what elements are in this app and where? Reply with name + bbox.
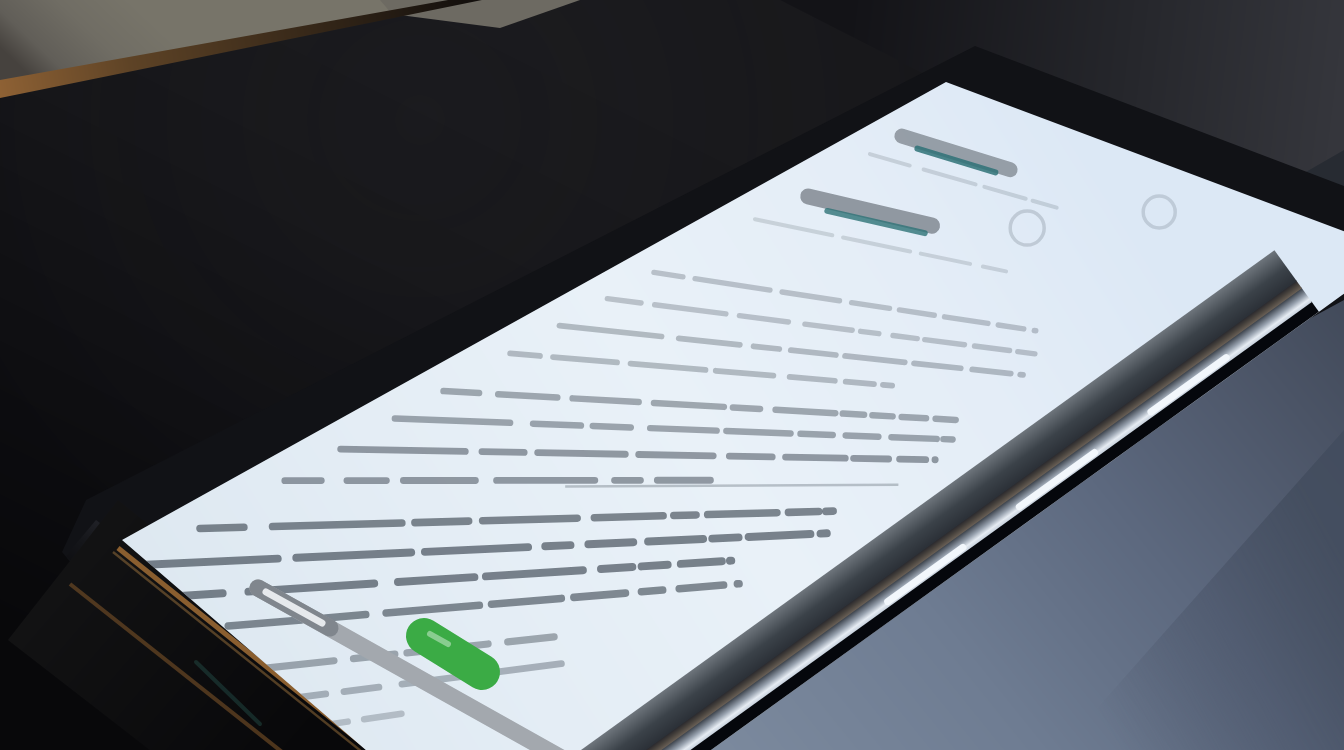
button[interactable]: Smartphone lying on a dark desk xyxy=(0,0,1344,750)
